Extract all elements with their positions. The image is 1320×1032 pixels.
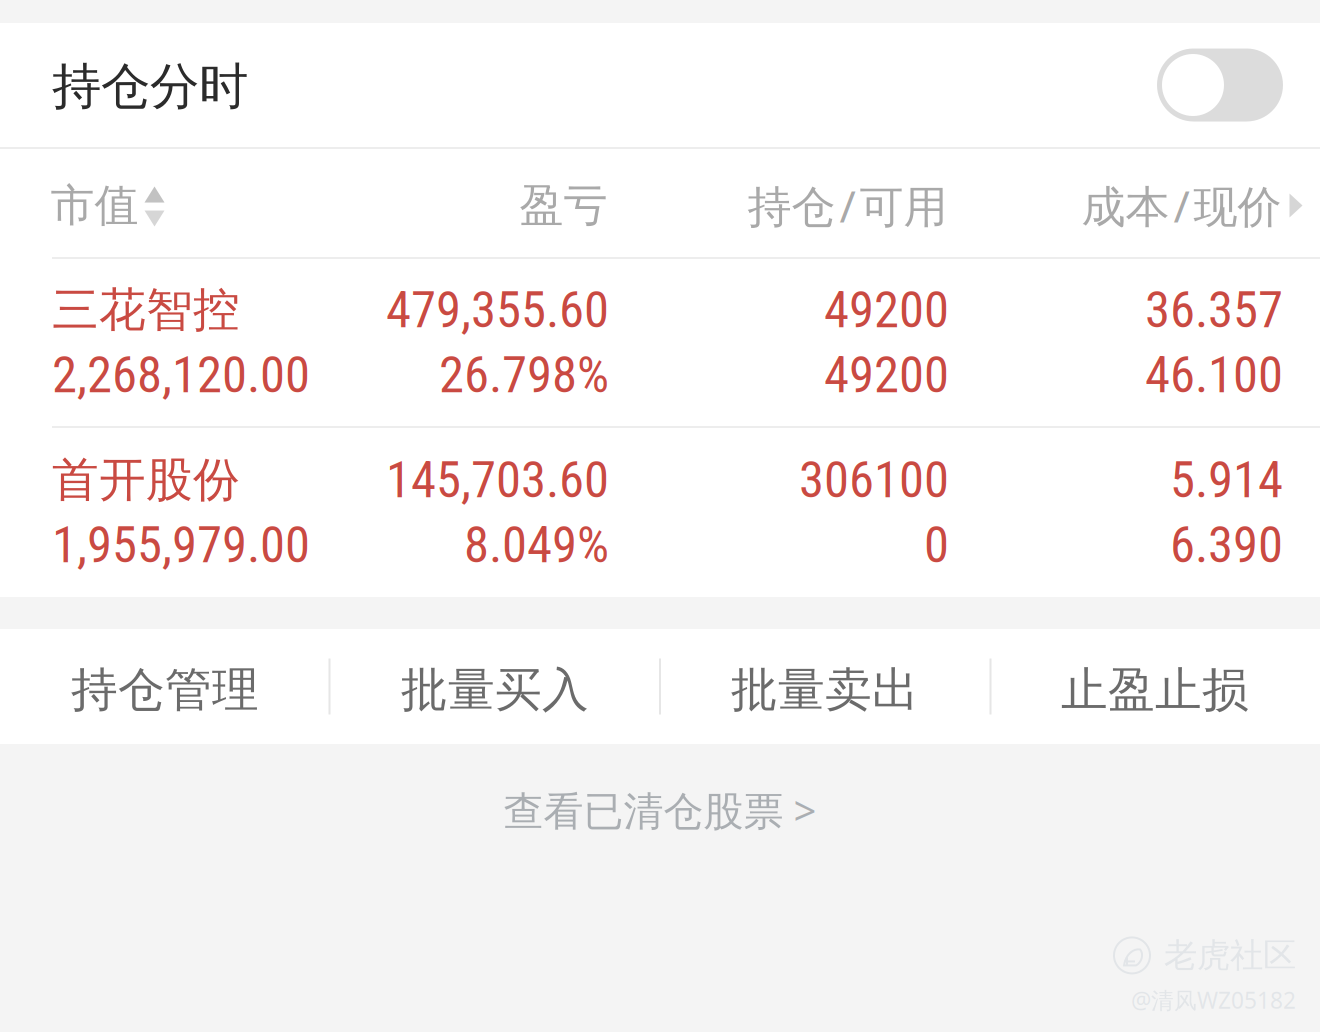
button[interactable]: 查看已清仓股票 > (0, 770, 1320, 850)
staticText: 持仓 / 可用 (747, 176, 947, 235)
staticText: 批量买入 (401, 661, 589, 719)
staticText: 8.049% (464, 515, 609, 575)
button[interactable]: 批量卖出 (660, 635, 990, 745)
button[interactable]: 切换列 (1281, 150, 1302, 260)
staticText: 老虎社区 (1164, 935, 1296, 976)
button[interactable]: 首开股份 (0, 428, 1320, 597)
staticText: 0 (924, 515, 949, 575)
staticText: 批量卖出 (731, 661, 919, 719)
staticText: 1,955,979.00 (52, 515, 310, 575)
staticText: 49200 (824, 345, 949, 405)
staticText: 5.914 (1170, 450, 1283, 510)
staticText: 49200 (824, 280, 949, 340)
button[interactable]: 持仓 / 可用 (607, 150, 947, 260)
button[interactable]: 三花智控 (0, 259, 1320, 426)
staticText: 首开股份 (52, 451, 240, 509)
staticText: 查看已清仓股票 > (503, 783, 816, 836)
button[interactable]: 市值 (50, 150, 346, 260)
staticText: 36.357 (1145, 280, 1283, 340)
staticText: 306100 (799, 450, 949, 510)
staticText: 持仓管理 (71, 661, 259, 719)
staticText: 6.390 (1170, 515, 1283, 575)
button[interactable]: 盈亏 (346, 150, 607, 260)
staticText: 止盈止损 (1061, 661, 1249, 719)
staticText: @清风WZ05182 (1131, 985, 1296, 1015)
button[interactable]: 持仓分时开关 (1157, 48, 1283, 121)
staticText: 46.100 (1145, 345, 1283, 405)
button[interactable]: 止盈止损 (990, 635, 1320, 745)
staticText: 2,268,120.00 (52, 345, 310, 405)
button[interactable]: 批量买入 (330, 635, 660, 745)
button[interactable]: 持仓管理 (0, 635, 330, 745)
staticText: 持仓分时 (52, 56, 248, 117)
staticText: 盈亏 (519, 178, 607, 232)
staticText: 市值 (50, 178, 138, 232)
staticText: 479,355.60 (386, 280, 609, 340)
button[interactable]: 成本 / 现价 (947, 150, 1281, 260)
staticText: 145,703.60 (386, 450, 609, 510)
staticText: 成本 / 现价 (1081, 176, 1281, 235)
staticText: 三花智控 (52, 281, 240, 339)
staticText: 26.798% (439, 345, 609, 405)
